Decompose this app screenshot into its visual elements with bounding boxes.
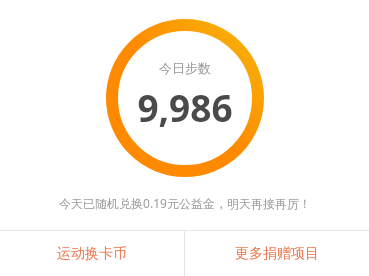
button[interactable]: 运动换卡币 <box>0 231 184 276</box>
staticText: 今日步数 <box>159 60 211 76</box>
staticText: 运动换卡币 <box>57 245 127 263</box>
button[interactable]: 更多捐赠项目 <box>185 231 369 276</box>
staticText: 9,986 <box>137 82 233 132</box>
staticText: 今天已随机兑换0.19元公益金，明天再接再厉！ <box>59 195 311 211</box>
staticText: 更多捐赠项目 <box>235 245 319 263</box>
